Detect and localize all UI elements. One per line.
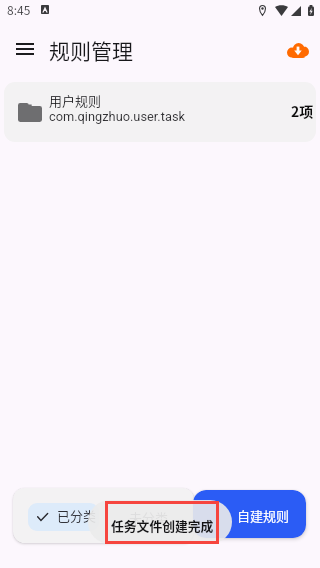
button[interactable]: 未分类 <box>117 503 180 531</box>
button[interactable]: 自建规则 <box>193 490 306 538</box>
staticText: 任务文件创建完成 <box>111 516 214 535</box>
staticText: 未分类 <box>129 508 169 527</box>
button[interactable]: 已分类 <box>28 503 99 531</box>
button[interactable]: Download <box>287 42 309 58</box>
staticText: 用户规则 <box>49 91 102 110</box>
staticText: com.qingzhuo.user.task <box>49 109 185 124</box>
staticText: 自建规则 <box>237 506 290 525</box>
button[interactable]: Menu <box>5 29 44 68</box>
staticText: 已分类 <box>57 506 97 525</box>
button[interactable]: 用户规则 <box>4 82 316 142</box>
staticText: 规则管理 <box>49 35 133 65</box>
staticText: 8:45 <box>7 1 31 18</box>
staticText: 2项 <box>291 101 314 121</box>
